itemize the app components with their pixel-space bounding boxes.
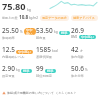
- other: 注意: [2, 91, 6, 95]
- staticText: 才: [80, 49, 84, 53]
- button[interactable]: 26.9: [71, 26, 98, 39]
- staticText: 部位別測定: [36, 74, 52, 78]
- staticText: 10.8: [19, 14, 29, 20]
- button[interactable]: 測定データの見方: [40, 15, 69, 21]
- button[interactable]: 53.50: [36, 26, 71, 40]
- staticText: 体組成計測機能の使い方について: [7, 91, 54, 95]
- button[interactable]: 12.5: [2, 45, 36, 59]
- staticText: 標準: [23, 69, 30, 73]
- staticText: kg/m2: [29, 16, 39, 20]
- staticText: 42: [71, 45, 79, 54]
- staticText: 53.50: [36, 26, 53, 35]
- staticText: 測定データの見方: [42, 16, 67, 20]
- staticText: 体内年齢: [71, 55, 84, 59]
- staticText: 26.9: [71, 26, 84, 35]
- button[interactable]: 25.50: [2, 26, 36, 40]
- staticText: 健康アドバイス: [73, 16, 96, 20]
- staticText: 標準: [61, 31, 68, 35]
- staticText: BMI: [71, 35, 78, 39]
- staticText: kg: [16, 68, 20, 72]
- staticText: 標準: [47, 69, 54, 73]
- staticText: 筋肉量: [36, 36, 46, 40]
- staticText: 50.6: [71, 64, 84, 73]
- staticText: %: [20, 30, 23, 34]
- staticText: 基礎代謝量: [36, 55, 52, 59]
- staticText: %: [85, 68, 88, 72]
- staticText: 75.80: [2, 0, 26, 13]
- staticText: 99: [36, 64, 44, 73]
- staticText: kg: [27, 7, 31, 12]
- staticText: やや高い: [81, 35, 94, 39]
- button[interactable]: 2.90: [2, 64, 36, 78]
- button[interactable]: 50.6: [71, 64, 98, 78]
- button[interactable]: 99: [36, 64, 71, 78]
- staticText: 25.50: [2, 26, 19, 35]
- staticText: 体水分率: [71, 74, 84, 78]
- staticText: kcal: [52, 49, 58, 53]
- staticText: やや高い: [26, 28, 34, 35]
- button[interactable]: 注意: [0, 91, 100, 95]
- staticText: 2.90: [2, 64, 15, 73]
- staticText: 推定骨量: [2, 74, 15, 78]
- staticText: 体脂肪率: [2, 36, 15, 40]
- staticText: 内臓脂肪レベル: [2, 55, 25, 59]
- button[interactable]: 42: [71, 45, 98, 59]
- staticText: 1585: [36, 45, 51, 54]
- staticText: 前回との差: [2, 16, 18, 20]
- staticText: 12.5: [2, 45, 15, 54]
- staticText: kg: [54, 30, 58, 34]
- staticText: くわしく見る >: [54, 91, 76, 95]
- staticText: やや高い: [18, 50, 31, 54]
- button[interactable]: 1585: [36, 45, 71, 59]
- button[interactable]: 健康アドバイス: [71, 15, 98, 21]
